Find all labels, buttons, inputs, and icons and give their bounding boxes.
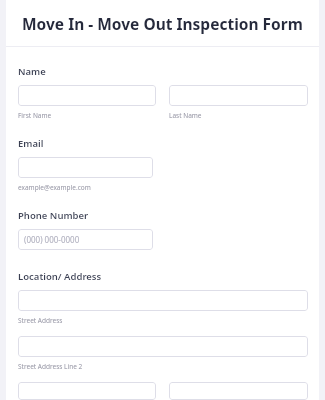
button[interactable] — [169, 85, 308, 106]
staticText: Email — [18, 137, 44, 150]
button[interactable] — [18, 290, 308, 311]
button[interactable]: (000) 000-0000 — [18, 229, 153, 250]
button[interactable] — [18, 157, 153, 178]
staticText: Phone Number — [18, 209, 89, 222]
staticText: First Name — [18, 111, 52, 120]
button[interactable] — [18, 336, 308, 357]
staticText: Move In - Move Out Inspection Form — [22, 13, 303, 34]
staticText: Street Address — [18, 316, 63, 325]
button[interactable] — [169, 382, 308, 400]
staticText: (000) 000-0000 — [24, 234, 80, 245]
staticText: example@example.com — [18, 183, 91, 192]
staticText: Street Address Line 2 — [18, 362, 83, 371]
staticText: Last Name — [169, 111, 202, 120]
button[interactable] — [18, 85, 156, 106]
staticText: Location/ Address — [18, 270, 102, 283]
staticText: Name — [18, 65, 46, 78]
button[interactable] — [18, 382, 156, 400]
